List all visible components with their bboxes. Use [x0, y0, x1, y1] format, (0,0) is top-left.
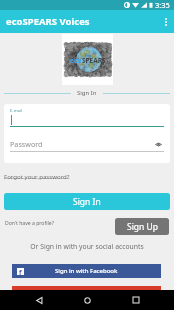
button[interactable]: Sign In	[4, 193, 170, 210]
staticText: Forgot your password?	[4, 172, 70, 180]
staticText: Sign In	[73, 196, 101, 208]
staticText: Sign In	[77, 89, 97, 97]
staticText: 3:35	[155, 0, 170, 10]
staticText: ecoSPEARS Voices	[6, 15, 90, 28]
staticText: Sign in with Facebook	[55, 267, 118, 275]
button[interactable]: Sign Up	[115, 218, 169, 235]
button[interactable]: Forgot your password?	[4, 170, 70, 182]
staticText: Password	[10, 139, 43, 149]
staticText: E-mail	[10, 108, 23, 114]
staticText: f	[19, 268, 22, 275]
button[interactable]: f	[12, 264, 161, 278]
button[interactable]: G	[12, 286, 161, 300]
button[interactable]: Home	[77, 290, 97, 310]
staticText: eco	[70, 56, 82, 65]
button[interactable]: More options	[157, 10, 174, 33]
staticText: Don't have a profile?	[5, 220, 54, 227]
staticText: Or Sign in with your social accounts	[0, 242, 174, 251]
button[interactable]: Recent apps	[126, 290, 146, 310]
staticText: Sign Up	[127, 221, 158, 233]
button[interactable]: Back	[29, 290, 49, 310]
button[interactable]: Show password	[151, 137, 165, 151]
staticText: SPEARS	[82, 56, 106, 65]
staticText: Sign in with Google+	[57, 289, 116, 297]
